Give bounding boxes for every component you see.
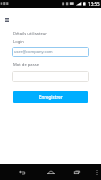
staticText: user@company.com: [14, 49, 53, 55]
button[interactable]: [12, 71, 89, 82]
staticText: Enregistrer: [39, 94, 63, 100]
staticText: Mot de passe: [13, 62, 39, 68]
staticText: 13:55: [88, 1, 100, 7]
staticText: Login: [13, 39, 24, 45]
button[interactable]: Back: [15, 166, 28, 178]
button[interactable]: Recent apps: [70, 166, 83, 178]
button[interactable]: user@company.com: [12, 47, 89, 57]
staticText: Détails utilisateur: [13, 31, 48, 37]
button[interactable]: Home: [44, 166, 57, 178]
button[interactable]: Enregistrer: [13, 91, 88, 103]
button[interactable]: More options: [93, 166, 100, 178]
button[interactable]: Open navigation menu: [0, 13, 13, 26]
